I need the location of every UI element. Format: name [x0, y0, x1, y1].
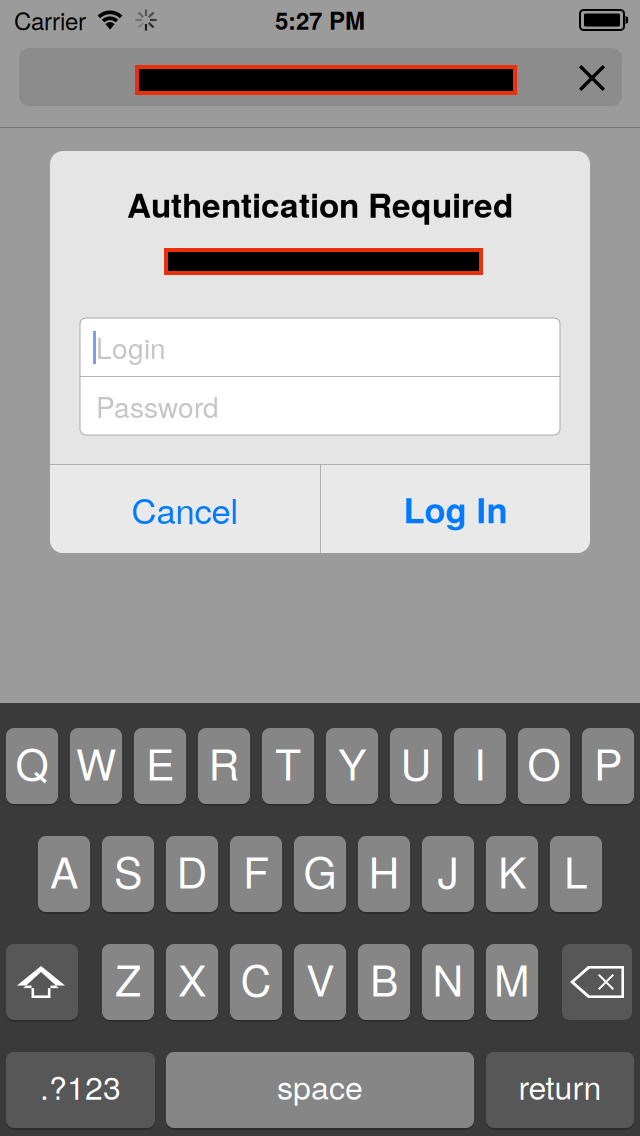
- button[interactable]: S: [102, 836, 154, 914]
- button[interactable]: N: [422, 944, 474, 1022]
- button[interactable]: A: [38, 836, 90, 914]
- staticText: T: [275, 731, 301, 793]
- button[interactable]: Shift: [6, 944, 78, 1022]
- staticText: R: [208, 731, 239, 793]
- staticText: Login: [96, 327, 166, 367]
- button[interactable]: H: [358, 836, 410, 914]
- staticText: Password: [96, 386, 219, 426]
- staticText: 5:27 PM: [275, 3, 365, 37]
- button[interactable]: G: [294, 836, 346, 914]
- staticText: Carrier: [14, 3, 86, 37]
- button[interactable]: space: [166, 1052, 474, 1130]
- staticText: E: [146, 731, 174, 793]
- staticText: C: [240, 947, 271, 1009]
- button[interactable]: Y: [326, 728, 378, 806]
- staticText: J: [437, 839, 458, 901]
- button[interactable]: U: [390, 728, 442, 806]
- staticText: Cancel: [131, 484, 238, 534]
- staticText: D: [176, 839, 207, 901]
- button[interactable]: B: [358, 944, 410, 1022]
- button[interactable]: J: [422, 836, 474, 914]
- button[interactable]: P: [582, 728, 634, 806]
- button[interactable]: Q: [6, 728, 58, 806]
- staticText: Z: [115, 947, 141, 1009]
- button[interactable]: K: [486, 836, 538, 914]
- staticText: Y: [338, 731, 366, 793]
- staticText: S: [114, 839, 142, 901]
- staticText: W: [76, 731, 116, 793]
- staticText: space: [277, 1063, 363, 1109]
- button[interactable]: Z: [102, 944, 154, 1022]
- staticText: O: [527, 731, 560, 793]
- staticText: P: [594, 731, 622, 793]
- button[interactable]: T: [262, 728, 314, 806]
- staticText: L: [564, 839, 588, 901]
- staticText: A: [50, 839, 78, 901]
- staticText: F: [243, 839, 269, 901]
- staticText: I: [474, 731, 486, 793]
- button[interactable]: D: [166, 836, 218, 914]
- button[interactable]: Delete: [562, 944, 632, 1020]
- staticText: return: [518, 1063, 601, 1109]
- button[interactable]: M: [486, 944, 538, 1022]
- staticText: X: [178, 947, 206, 1009]
- button[interactable]: .?123: [6, 1052, 155, 1130]
- staticText: Q: [15, 731, 48, 793]
- staticText: .?123: [40, 1063, 121, 1109]
- button[interactable]: Stop loading: [557, 49, 627, 107]
- button[interactable]: Log In: [321, 465, 590, 553]
- staticText: Log In: [403, 484, 507, 534]
- staticText: U: [400, 731, 431, 793]
- button[interactable]: W: [70, 728, 122, 806]
- staticText: G: [303, 839, 336, 901]
- button[interactable]: F: [230, 836, 282, 914]
- button[interactable]: L: [550, 836, 602, 914]
- staticText: K: [498, 839, 526, 901]
- staticText: M: [494, 947, 530, 1009]
- staticText: B: [370, 947, 398, 1009]
- button[interactable]: I: [454, 728, 506, 806]
- staticText: V: [306, 947, 334, 1009]
- button[interactable]: R: [198, 728, 250, 806]
- button[interactable]: C: [230, 944, 282, 1022]
- button[interactable]: Cancel: [50, 465, 320, 553]
- staticText: N: [432, 947, 463, 1009]
- staticText: Authentication Required: [127, 180, 513, 228]
- staticText: H: [368, 839, 399, 901]
- button[interactable]: X: [166, 944, 218, 1022]
- button[interactable]: V: [294, 944, 346, 1022]
- button[interactable]: E: [134, 728, 186, 806]
- button[interactable]: O: [518, 728, 570, 806]
- button[interactable]: return: [486, 1052, 634, 1130]
